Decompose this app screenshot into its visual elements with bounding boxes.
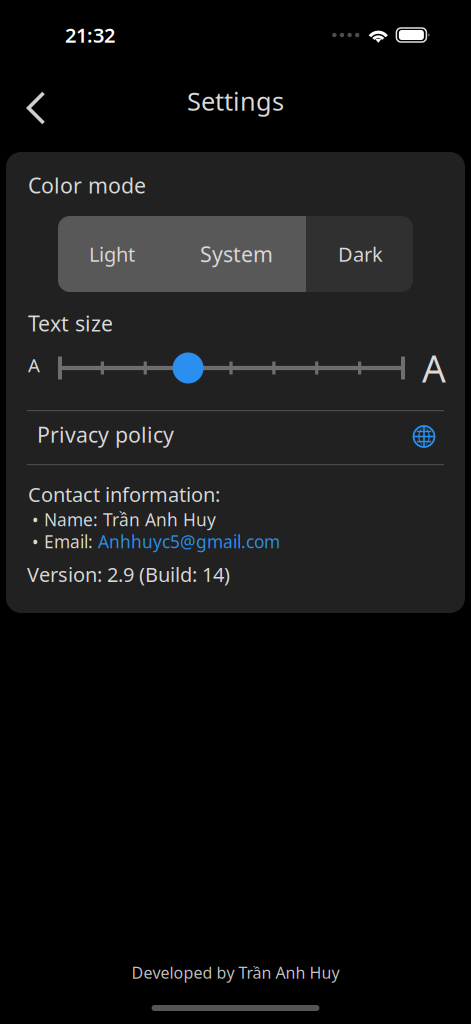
staticText: A bbox=[422, 343, 446, 393]
staticText: • Email: bbox=[32, 530, 98, 553]
staticText: Light bbox=[89, 241, 135, 267]
staticText: A bbox=[28, 353, 40, 377]
staticText: Dark bbox=[338, 241, 383, 267]
staticText: Privacy policy bbox=[37, 420, 174, 449]
staticText: System bbox=[200, 240, 273, 268]
button[interactable]: Back bbox=[10, 82, 62, 134]
staticText: • Name: Trần Anh Huy bbox=[32, 508, 216, 531]
button[interactable]: System bbox=[174, 216, 298, 292]
button[interactable]: Light bbox=[50, 216, 174, 292]
staticText: Developed by Trần Anh Huy bbox=[131, 962, 339, 983]
button[interactable]: Anhhuyc5@gmail.com bbox=[98, 530, 280, 553]
staticText: Color mode bbox=[28, 171, 146, 199]
staticText: Anhhuyc5@gmail.com bbox=[98, 530, 280, 553]
button[interactable]: Dark bbox=[307, 216, 414, 292]
button[interactable]: Privacy policy bbox=[6, 408, 465, 461]
staticText: Settings bbox=[187, 84, 284, 118]
staticText: 21:32 bbox=[65, 22, 115, 48]
staticText: Text size bbox=[28, 309, 113, 337]
staticText: Version: 2.9 (Build: 14) bbox=[27, 561, 230, 588]
staticText: Contact information: bbox=[28, 481, 220, 508]
